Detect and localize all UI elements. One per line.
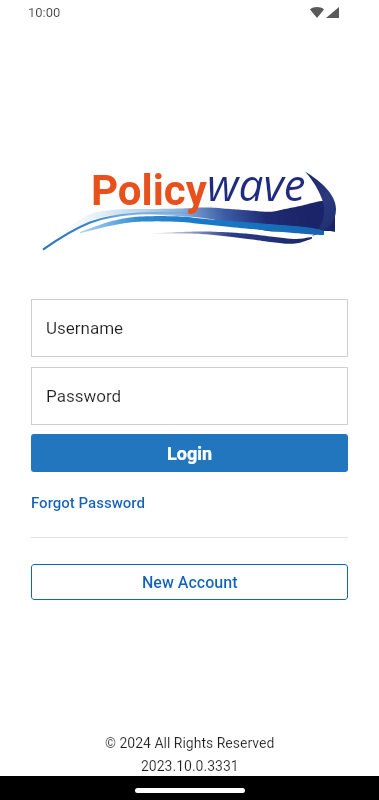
staticText: © 2024 All Rights Reserved bbox=[105, 735, 275, 751]
staticText: wave bbox=[207, 154, 306, 214]
button[interactable]: New Account bbox=[31, 564, 348, 600]
other: Cellular signal bbox=[326, 7, 339, 18]
other: Wi-Fi signal bbox=[310, 7, 324, 18]
staticText: Username bbox=[46, 318, 124, 338]
button[interactable]: Login bbox=[31, 434, 348, 472]
staticText: Password bbox=[46, 386, 122, 406]
staticText: Policy bbox=[91, 166, 207, 215]
staticText: Login bbox=[167, 443, 213, 464]
button[interactable]: Forgot Password bbox=[31, 491, 145, 515]
button[interactable]: Username bbox=[31, 299, 348, 357]
button[interactable]: Password bbox=[31, 367, 348, 425]
staticText: 10:00 bbox=[28, 5, 61, 20]
staticText: 2023.10.0.3331 bbox=[141, 758, 239, 774]
staticText: New Account bbox=[142, 573, 238, 592]
staticText: Forgot Password bbox=[31, 494, 145, 512]
